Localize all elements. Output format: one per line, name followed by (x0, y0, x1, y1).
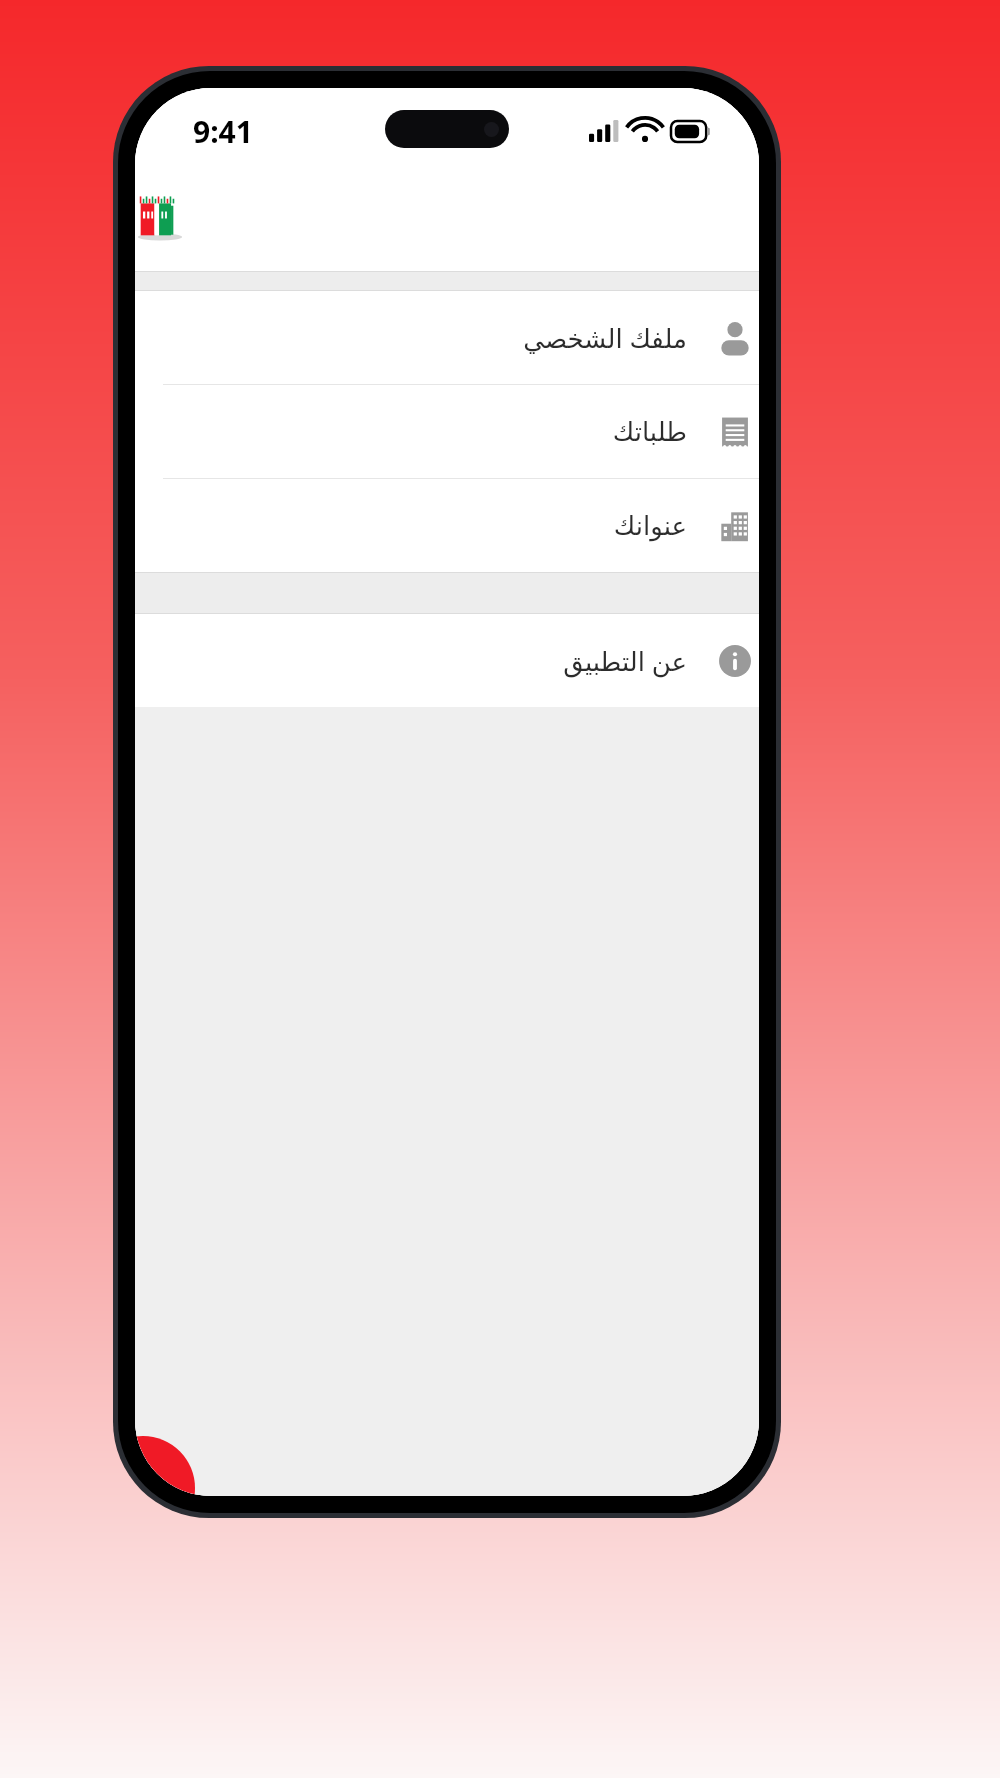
button[interactable]: Your orders (135, 385, 759, 478)
button[interactable]: Your address (135, 479, 759, 572)
staticText: ملفك الشخصي (523, 320, 687, 355)
button[interactable]: About the app (135, 614, 759, 707)
staticText: طلباتك (612, 417, 687, 447)
staticText: عنوانك (613, 511, 687, 541)
button[interactable]: App logo (137, 186, 183, 244)
button[interactable]: Add (135, 1436, 195, 1496)
staticText: عن التطبيق (563, 643, 687, 678)
button[interactable]: Your profile (135, 291, 759, 384)
staticText: 9:41 (193, 111, 253, 152)
